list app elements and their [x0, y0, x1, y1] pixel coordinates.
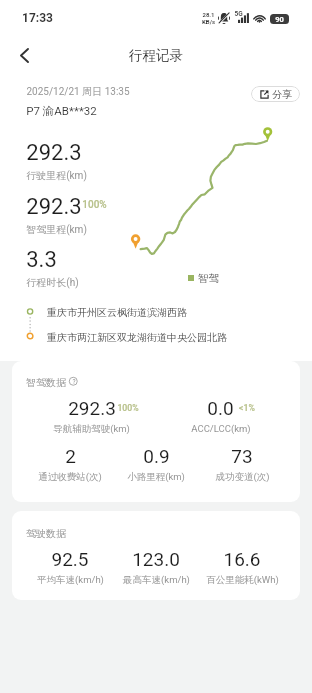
staticText: 100% [82, 199, 107, 211]
staticText: 导航辅助驾驶(km) [53, 423, 130, 435]
staticText: 92.5 [51, 548, 89, 570]
staticText: 3.3 [26, 247, 57, 273]
staticText: 重庆市两江新区双龙湖街道中央公园北路 [47, 331, 227, 344]
staticText: 2 [65, 445, 76, 467]
staticText: 2025/12/21 周日 13:35 [26, 85, 130, 98]
staticText: 28.1 [202, 11, 215, 18]
staticText: 90 [275, 15, 284, 24]
staticText: 智驾 [198, 272, 219, 285]
staticText: 16.6 [223, 548, 261, 570]
staticText: 智驾里程(km) [26, 223, 87, 236]
staticText: KB/s [202, 18, 215, 25]
staticText: 成功变道(次) [215, 471, 270, 483]
staticText: 17:33 [22, 11, 53, 25]
staticText: 292.3 [26, 194, 82, 220]
staticText: 智驾数据 [26, 376, 66, 389]
staticText: 通过收费站(次) [38, 471, 102, 483]
staticText: 驾驶数据 [26, 527, 66, 540]
button[interactable]: 分享 [251, 86, 300, 102]
staticText: 292.3 [26, 140, 82, 166]
staticText: 平均车速(km/h) [37, 574, 104, 586]
staticText: ? [72, 378, 76, 386]
staticText: <1% [239, 403, 255, 413]
button[interactable]: Back [6, 36, 42, 74]
staticText: 行程记录 [129, 47, 183, 64]
staticText: 行驶里程(km) [26, 169, 87, 182]
staticText: 5G [234, 10, 243, 18]
staticText: 73 [231, 445, 253, 467]
staticText: 小路里程(km) [127, 471, 185, 483]
staticText: 0.0 [207, 397, 234, 419]
staticText: 行程时长(h) [26, 276, 79, 289]
staticText: P7 渝AB***32 [26, 104, 97, 118]
staticText: 0.9 [143, 445, 170, 467]
staticText: 重庆市开州区云枫街道滨湖西路 [47, 306, 187, 319]
staticText: ACC/LCC(km) [191, 423, 251, 434]
staticText: 123.0 [132, 548, 180, 570]
staticText: 292.3 [68, 397, 116, 419]
staticText: 百公里能耗(kWh) [206, 574, 279, 586]
staticText: 最高车速(km/h) [123, 574, 190, 586]
staticText: 100% [117, 403, 139, 413]
staticText: 分享 [272, 88, 292, 101]
